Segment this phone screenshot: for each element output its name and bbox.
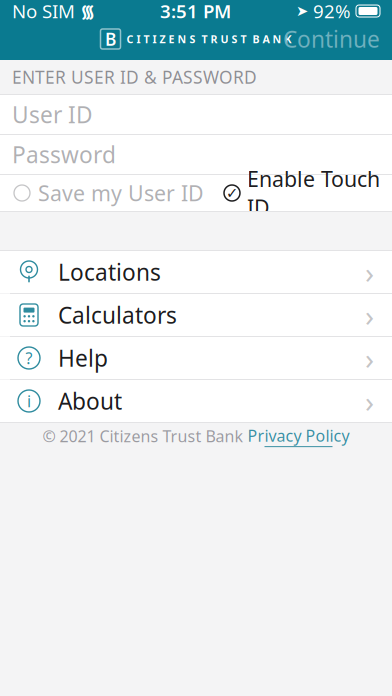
staticText: ›	[365, 381, 374, 420]
staticText: ›	[365, 252, 374, 291]
staticText: Save my User ID	[38, 179, 204, 207]
staticText: Continue	[283, 24, 380, 54]
staticText: C I T I Z E N S T R U S T B A N K	[126, 32, 291, 46]
staticText: ›	[365, 295, 374, 334]
staticText: ᯾	[75, 0, 95, 22]
staticText: No SIM	[12, 0, 75, 23]
staticText: ENTER USER ID & PASSWORD	[12, 65, 257, 88]
staticText: 3:51 PM	[160, 0, 231, 23]
staticText: ➤	[296, 3, 308, 19]
button[interactable]: i	[0, 380, 392, 422]
staticText: B	[105, 27, 116, 50]
button[interactable]: User ID	[0, 95, 392, 134]
staticText: Calculators	[58, 300, 177, 330]
staticText: Locations	[58, 257, 161, 287]
staticText: Enable Touch ID	[247, 165, 380, 221]
staticText: About	[58, 386, 122, 416]
staticText: Password	[12, 139, 116, 169]
staticText: ›	[365, 338, 374, 377]
button[interactable]: Locations	[0, 251, 392, 293]
staticText: © 2021 Citizens Trust Bank	[42, 425, 243, 447]
button[interactable]: Privacy Policy	[247, 425, 349, 447]
button[interactable]: ✓	[224, 159, 392, 227]
button[interactable]: Continue	[271, 18, 392, 60]
button[interactable]: Password	[0, 135, 392, 174]
staticText: User ID	[12, 99, 93, 129]
staticText: Privacy Policy	[247, 425, 349, 446]
staticText: i	[27, 390, 31, 412]
staticText: Help	[58, 343, 108, 373]
staticText: ✓	[226, 185, 238, 201]
button[interactable]: Calculators	[0, 294, 392, 336]
button[interactable]: ?	[0, 337, 392, 379]
staticText: 92%	[308, 0, 356, 23]
button[interactable]: Save my User ID	[0, 173, 204, 213]
staticText: ?	[25, 347, 32, 369]
